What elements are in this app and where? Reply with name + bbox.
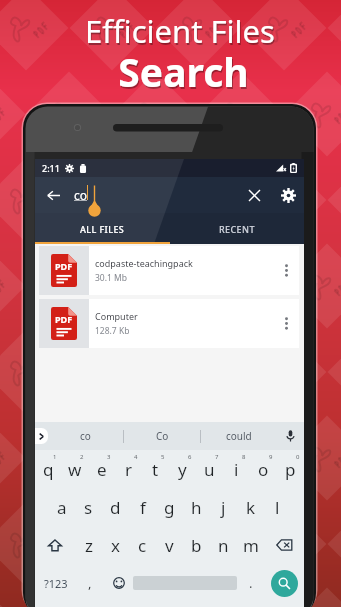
- staticText: r: [125, 458, 133, 481]
- staticText: codpaste-teachingpack: [95, 257, 193, 269]
- staticText: 7: [215, 453, 219, 461]
- staticText: t: [152, 458, 159, 481]
- button[interactable]: PDF: [39, 299, 299, 348]
- staticText: b: [191, 534, 202, 557]
- staticText: Efficient Files: [85, 10, 275, 52]
- button[interactable]: Backspace: [264, 526, 304, 564]
- staticText: ALL FILES: [80, 223, 125, 235]
- button[interactable]: d: [102, 488, 129, 526]
- button[interactable]: o: [250, 450, 277, 488]
- staticText: h: [191, 496, 202, 519]
- button[interactable]: Clear query: [242, 183, 266, 207]
- staticText: q: [43, 458, 54, 481]
- button[interactable]: k: [237, 488, 264, 526]
- staticText: Efficient Files: [86, 12, 276, 54]
- staticText: co: [80, 429, 91, 443]
- staticText: RECENT: [219, 223, 255, 235]
- staticText: e: [97, 458, 107, 481]
- button[interactable]: Co: [124, 422, 200, 450]
- staticText: s: [84, 496, 93, 519]
- staticText: 8: [242, 453, 246, 461]
- button[interactable]: Settings: [276, 183, 300, 207]
- staticText: 3: [107, 453, 111, 461]
- staticText: 1: [53, 453, 57, 461]
- button[interactable]: e: [88, 450, 115, 488]
- button[interactable]: t: [142, 450, 169, 488]
- button[interactable]: w: [61, 450, 88, 488]
- staticText: u: [204, 458, 215, 481]
- staticText: o: [258, 458, 269, 481]
- staticText: Computer: [95, 310, 138, 322]
- button[interactable]: could: [201, 422, 277, 450]
- button[interactable]: Search: [271, 570, 298, 597]
- button[interactable]: Emoji: [104, 564, 133, 602]
- staticText: d: [110, 496, 121, 519]
- staticText: v: [165, 534, 174, 557]
- staticText: 2: [80, 453, 84, 461]
- button[interactable]: More options: [273, 246, 299, 295]
- button[interactable]: .: [237, 564, 265, 602]
- button[interactable]: RECENT: [169, 213, 304, 244]
- staticText: a: [57, 496, 67, 519]
- staticText: 6: [188, 453, 192, 461]
- button[interactable]: r: [115, 450, 142, 488]
- button[interactable]: z: [75, 526, 102, 564]
- staticText: i: [234, 458, 239, 481]
- button[interactable]: Voice input: [277, 422, 304, 450]
- button[interactable]: v: [156, 526, 183, 564]
- button[interactable]: b: [183, 526, 210, 564]
- staticText: f: [140, 496, 146, 519]
- button[interactable]: y: [169, 450, 196, 488]
- button[interactable]: ALL FILES: [35, 213, 169, 244]
- staticText: could: [226, 429, 252, 443]
- staticText: 128.7 Kb: [95, 325, 130, 337]
- staticText: PDF: [55, 313, 73, 325]
- button[interactable]: More suggestions: [35, 428, 48, 444]
- staticText: Search: [118, 45, 249, 98]
- staticText: w: [68, 458, 82, 481]
- staticText: Co: [156, 429, 169, 443]
- button[interactable]: Shift: [35, 526, 75, 564]
- button[interactable]: u: [196, 450, 223, 488]
- button[interactable]: c: [129, 526, 156, 564]
- staticText: ,: [88, 574, 92, 592]
- staticText: 2:11: [42, 162, 60, 174]
- button[interactable]: m: [237, 526, 264, 564]
- staticText: Search: [119, 47, 250, 100]
- button[interactable]: p: [277, 450, 304, 488]
- staticText: 0: [296, 453, 300, 461]
- button[interactable]: q: [35, 450, 61, 488]
- staticText: x: [111, 534, 120, 557]
- button[interactable]: More options: [273, 299, 299, 348]
- button[interactable]: l: [264, 488, 291, 526]
- staticText: m: [243, 534, 259, 557]
- staticText: j: [221, 496, 226, 519]
- staticText: co: [74, 187, 88, 203]
- staticText: 30.1 Mb: [95, 272, 128, 284]
- staticText: l: [275, 496, 280, 519]
- staticText: p: [285, 458, 296, 481]
- button[interactable]: PDF: [39, 246, 299, 295]
- button[interactable]: s: [75, 488, 102, 526]
- button[interactable]: i: [223, 450, 250, 488]
- staticText: .: [249, 574, 253, 592]
- button[interactable]: f: [129, 488, 156, 526]
- button[interactable]: ?123: [35, 564, 76, 602]
- staticText: k: [246, 496, 256, 519]
- button[interactable]: h: [183, 488, 210, 526]
- button[interactable]: Back: [42, 184, 64, 206]
- staticText: PDF: [55, 260, 73, 272]
- button[interactable]: a: [48, 488, 75, 526]
- button[interactable]: n: [210, 526, 237, 564]
- staticText: ?123: [44, 576, 68, 591]
- button[interactable]: co: [48, 422, 123, 450]
- button[interactable]: ,: [76, 564, 104, 602]
- staticText: 9: [269, 453, 273, 461]
- button[interactable]: x: [102, 526, 129, 564]
- button[interactable]: j: [210, 488, 237, 526]
- staticText: g: [164, 496, 175, 519]
- staticText: y: [178, 458, 187, 481]
- button[interactable]: g: [156, 488, 183, 526]
- staticText: z: [85, 534, 93, 557]
